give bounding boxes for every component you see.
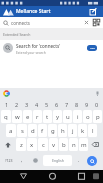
button[interactable]: 1	[1, 98, 12, 110]
button[interactable]: NEW	[87, 45, 97, 51]
staticText: ?123	[5, 158, 13, 163]
button[interactable]	[35, 170, 69, 183]
button[interactable]: m	[79, 138, 88, 151]
button[interactable]: h	[58, 124, 67, 137]
staticText: z	[20, 141, 23, 149]
button[interactable]	[85, 154, 102, 167]
button[interactable]: n	[69, 138, 78, 151]
button[interactable]: e	[23, 110, 32, 123]
staticText: b	[62, 141, 66, 149]
staticText: Extended Search	[3, 32, 31, 37]
staticText: 5	[45, 101, 49, 108]
staticText: 1	[5, 101, 9, 108]
staticText: h	[61, 127, 65, 135]
button[interactable]: 8	[72, 98, 82, 110]
button[interactable]	[90, 8, 97, 15]
staticText: f	[41, 127, 44, 135]
staticText: l	[92, 127, 94, 135]
staticText: .	[78, 157, 80, 164]
staticText: q	[4, 113, 8, 121]
button[interactable]: w	[12, 110, 22, 123]
button[interactable]: s	[17, 124, 27, 137]
button[interactable]: ?123	[1, 154, 17, 167]
staticText: 3	[25, 101, 29, 108]
staticText: o	[86, 113, 90, 121]
staticText: a	[9, 127, 13, 135]
button[interactable]: p	[93, 110, 102, 123]
staticText: d	[31, 127, 35, 135]
staticText: Mellance Start	[16, 8, 51, 15]
button[interactable]	[1, 138, 15, 151]
button[interactable]	[95, 91, 100, 96]
button[interactable]: k	[78, 124, 87, 137]
button[interactable]: d	[28, 124, 37, 137]
button[interactable]: c	[38, 138, 48, 151]
staticText: English	[52, 158, 64, 163]
staticText: ,	[21, 157, 23, 164]
staticText: 8	[75, 101, 79, 108]
button[interactable]: f	[38, 124, 47, 137]
button[interactable]: i	[73, 110, 82, 123]
button[interactable]: 0	[92, 98, 102, 110]
button[interactable]: b	[59, 138, 68, 151]
button[interactable]	[3, 90, 10, 97]
button[interactable]: connects	[3, 17, 100, 28]
button[interactable]	[89, 138, 102, 151]
staticText: t	[46, 113, 49, 121]
button[interactable]: t	[43, 110, 52, 123]
button[interactable]: y	[53, 110, 62, 123]
staticText: i	[77, 113, 79, 121]
button[interactable]: 6	[52, 98, 62, 110]
button[interactable]: a	[6, 124, 16, 137]
button[interactable]	[69, 170, 103, 183]
button[interactable]	[0, 170, 35, 183]
button[interactable]	[84, 20, 89, 25]
staticText: Extend your search	[16, 50, 46, 54]
staticText: s	[21, 127, 24, 135]
staticText: g	[51, 127, 55, 135]
button[interactable]	[27, 154, 43, 167]
button[interactable]: o	[83, 110, 92, 123]
button[interactable]: 2	[12, 98, 22, 110]
button[interactable]: .	[72, 154, 85, 167]
button[interactable]	[3, 8, 14, 16]
button[interactable]: English	[43, 155, 72, 166]
button[interactable]: 3	[22, 98, 32, 110]
button[interactable]: ,	[17, 154, 27, 167]
button[interactable]: 4	[32, 98, 42, 110]
staticText: n	[72, 141, 76, 149]
button[interactable]: u	[63, 110, 72, 123]
staticText: connects	[11, 20, 30, 26]
button[interactable]: j	[68, 124, 77, 137]
staticText: Search for 'connects'	[16, 43, 61, 49]
button[interactable]: x	[27, 138, 37, 151]
button[interactable]: v	[49, 138, 58, 151]
staticText: y	[56, 113, 60, 121]
button[interactable]: l	[88, 124, 97, 137]
button[interactable]: 7	[62, 98, 72, 110]
staticText: u	[66, 113, 70, 121]
staticText: 4	[35, 101, 39, 108]
staticText: e	[26, 113, 30, 121]
staticText: 6	[55, 101, 59, 108]
button[interactable]: r	[33, 110, 42, 123]
button[interactable]: 5	[42, 98, 52, 110]
staticText: 7	[65, 101, 69, 108]
button[interactable]: g	[48, 124, 57, 137]
staticText: x	[30, 141, 34, 149]
staticText: 0	[95, 101, 99, 108]
button[interactable]: Search for 'connects'	[3, 40, 103, 56]
button[interactable]	[93, 19, 100, 26]
staticText: j	[72, 127, 74, 135]
staticText: v	[52, 141, 56, 149]
staticText: c	[42, 141, 45, 149]
staticText: r	[36, 113, 39, 121]
staticText: 9	[85, 101, 89, 108]
staticText: m	[81, 141, 87, 149]
staticText: p	[96, 113, 100, 121]
staticText: k	[81, 127, 85, 135]
button[interactable]: q	[1, 110, 11, 123]
staticText: 2	[15, 101, 19, 108]
button[interactable]: 9	[82, 98, 92, 110]
button[interactable]: z	[16, 138, 26, 151]
